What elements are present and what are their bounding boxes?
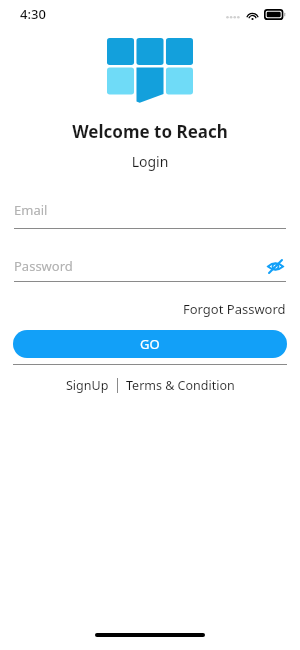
button[interactable]: Password xyxy=(14,257,264,275)
button[interactable]: Show password xyxy=(264,255,286,277)
staticText: Forgot Password xyxy=(183,300,286,318)
staticText: GO xyxy=(140,335,160,353)
staticText: SignUp xyxy=(66,377,109,394)
button[interactable]: Email xyxy=(14,201,286,229)
staticText: 4:30 xyxy=(20,5,46,23)
button[interactable]: Terms & Condition xyxy=(126,377,235,394)
staticText: Email xyxy=(14,201,48,219)
button[interactable]: SignUp xyxy=(66,377,109,394)
staticText: Login xyxy=(0,152,300,171)
button[interactable]: Forgot Password xyxy=(183,300,286,318)
staticText: Welcome to Reach xyxy=(0,120,300,143)
button[interactable]: GO xyxy=(13,330,287,358)
staticText: Terms & Condition xyxy=(126,377,235,394)
